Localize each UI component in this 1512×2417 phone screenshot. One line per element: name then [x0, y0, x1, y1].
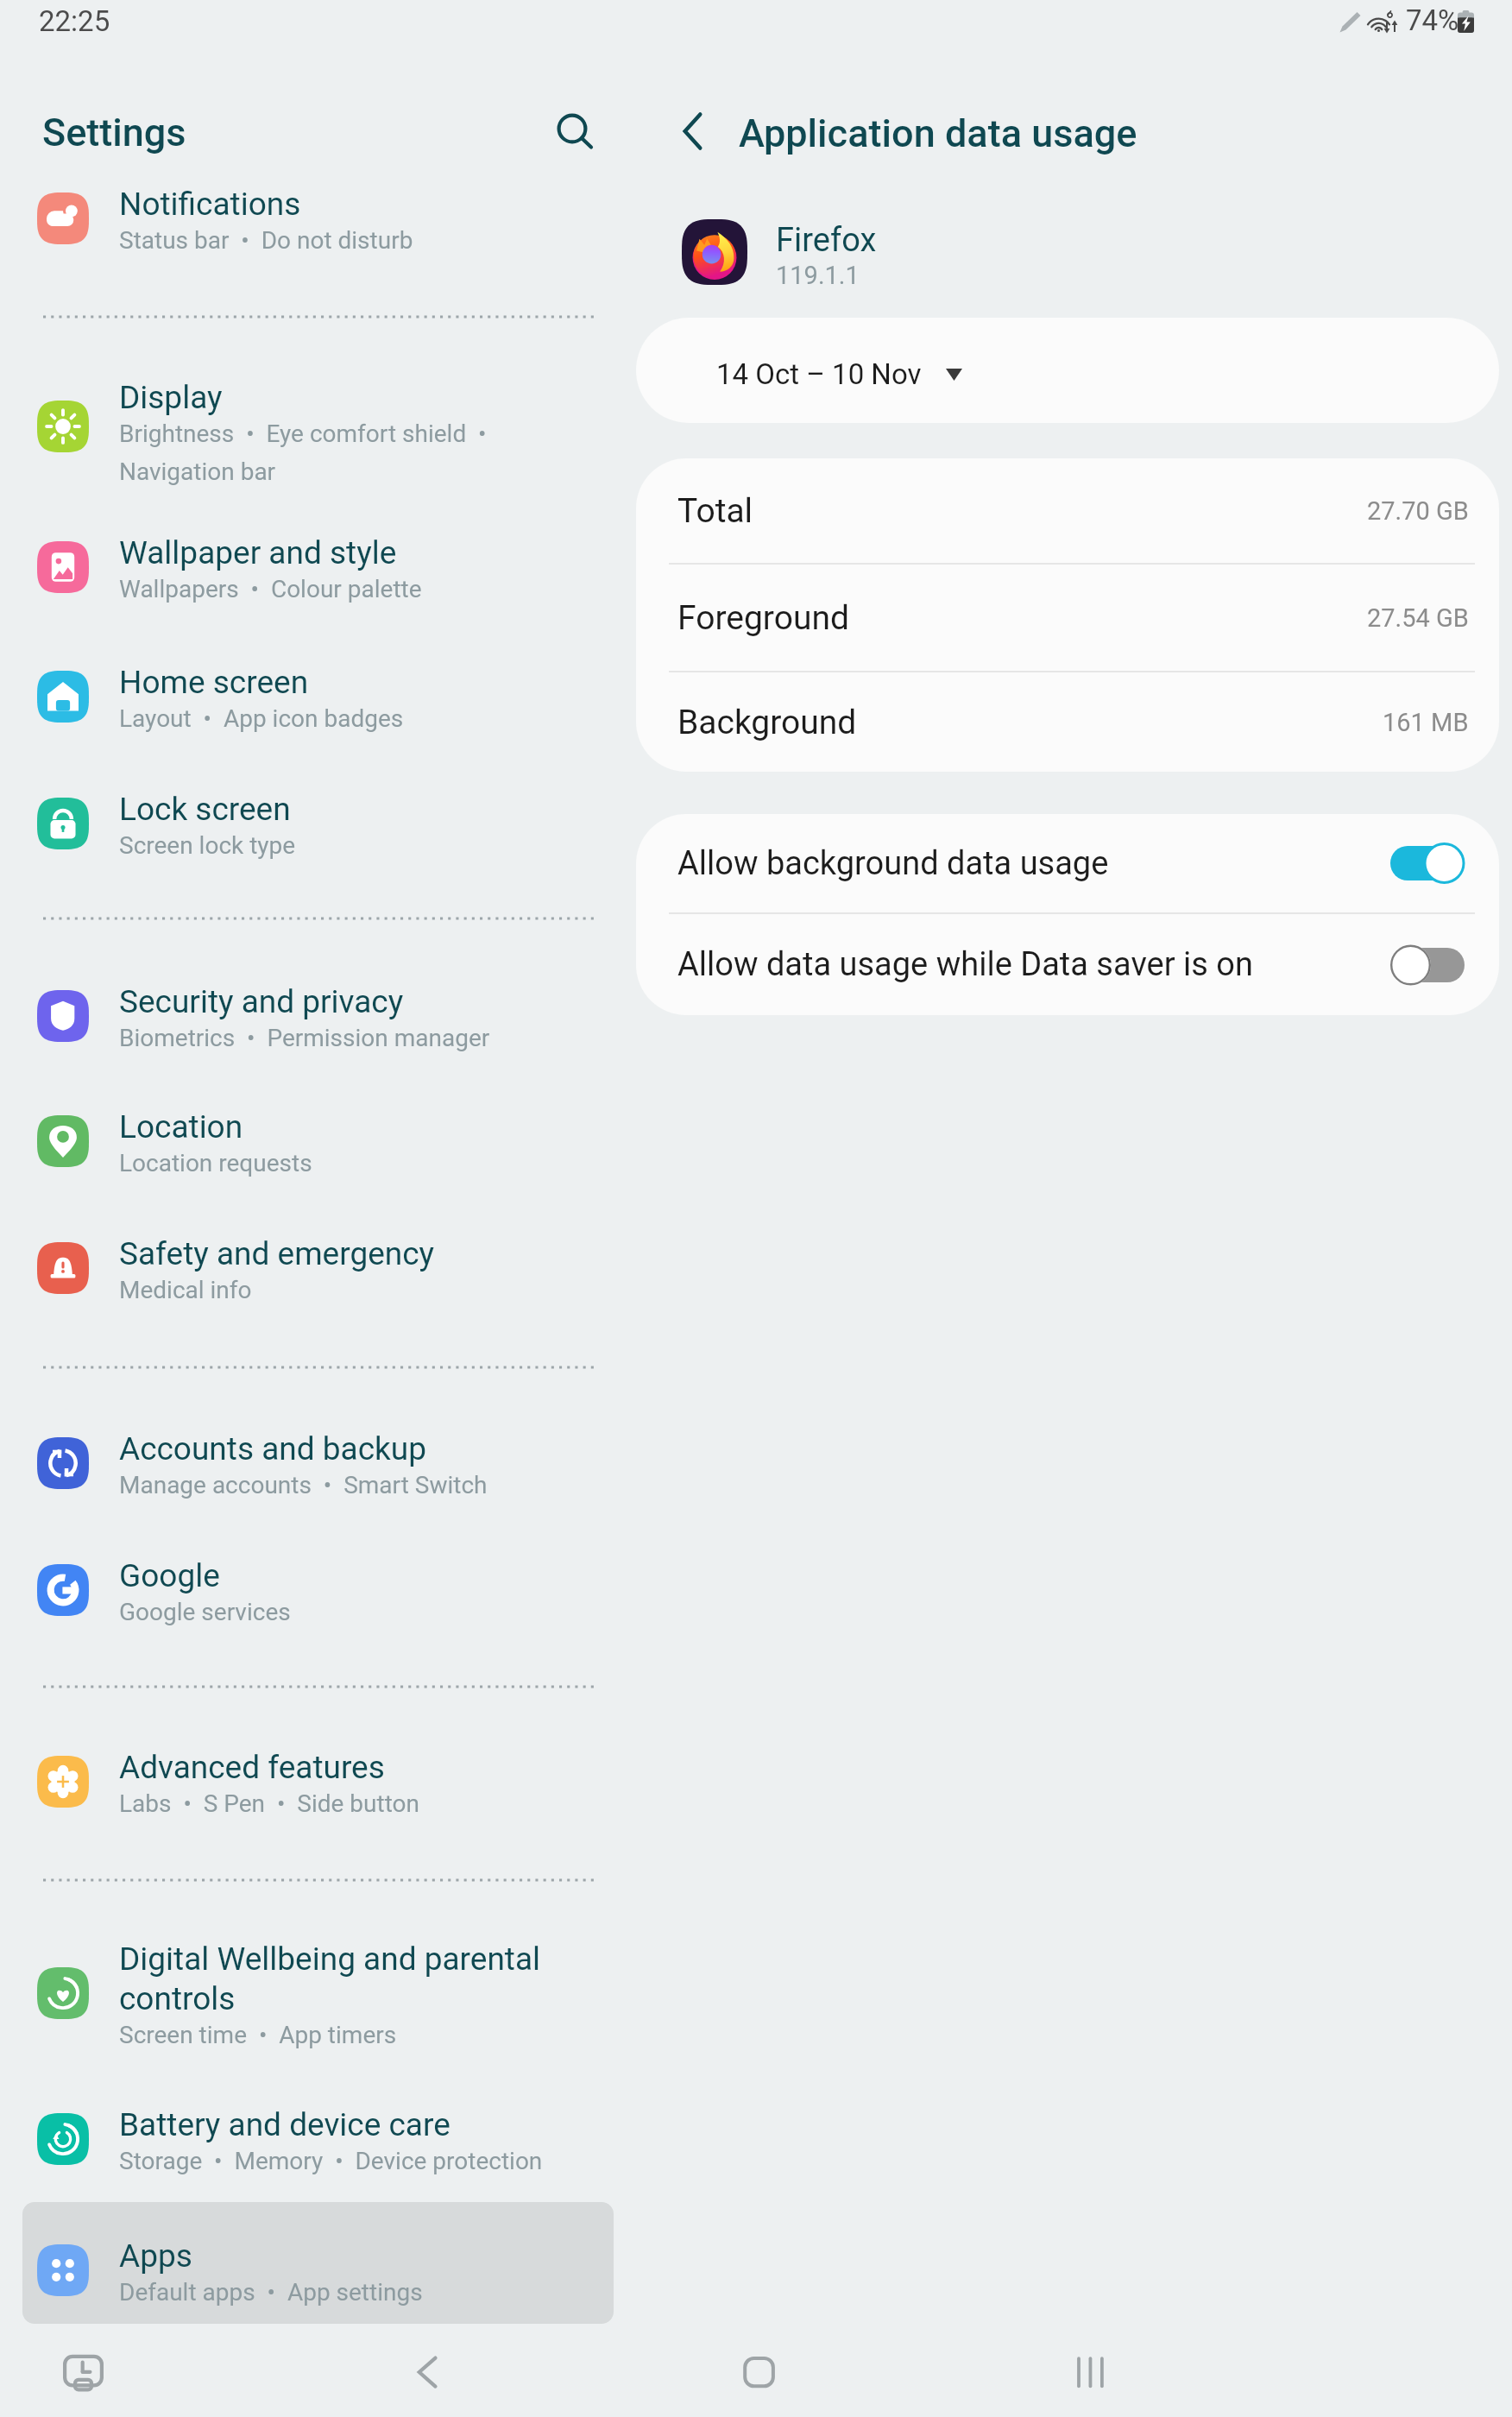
- staticText: Default apps • App settings: [119, 2278, 423, 2307]
- button[interactable]: [22, 1529, 614, 1650]
- staticText: Settings: [42, 110, 186, 155]
- button[interactable]: [22, 955, 614, 1076]
- staticText: Apps: [119, 2237, 192, 2275]
- staticText: Labs • S Pen • Side button: [119, 1789, 419, 1818]
- button[interactable]: [22, 506, 614, 628]
- staticText: Home screen: [119, 664, 309, 701]
- button[interactable]: Foreground: [636, 565, 1499, 671]
- button[interactable]: [22, 2202, 614, 2324]
- button[interactable]: Back: [658, 97, 727, 166]
- staticText: Application data usage: [739, 110, 1137, 156]
- button[interactable]: Allow background data usage: [636, 814, 1499, 912]
- button[interactable]: Home: [708, 2336, 811, 2412]
- staticText: Screen time • App timers: [119, 2021, 397, 2049]
- button[interactable]: [22, 350, 614, 472]
- staticText: Medical info: [119, 1276, 252, 1304]
- staticText: Status bar • Do not disturb: [119, 226, 413, 255]
- button[interactable]: [22, 157, 614, 279]
- button[interactable]: Total: [636, 458, 1499, 563]
- staticText: Battery and device care: [119, 2106, 450, 2143]
- staticText: Google services: [119, 1598, 291, 1626]
- staticText: 74%: [1406, 3, 1459, 37]
- button[interactable]: [22, 1207, 614, 1328]
- staticText: Brightness • Eye comfort shield • Naviga…: [119, 420, 487, 486]
- button[interactable]: 14 Oct – 10 Nov: [636, 318, 1499, 423]
- button[interactable]: [22, 1912, 614, 2076]
- staticText: Storage • Memory • Device protection: [119, 2147, 543, 2175]
- staticText: Biometrics • Permission manager: [119, 1024, 490, 1052]
- staticText: 119.1.1: [776, 261, 860, 290]
- staticText: Google: [119, 1557, 220, 1594]
- staticText: Location requests: [119, 1149, 312, 1177]
- button[interactable]: Search: [538, 95, 607, 164]
- staticText: Foreground: [677, 598, 849, 638]
- button[interactable]: Background: [636, 672, 1499, 772]
- button[interactable]: Back: [371, 2336, 483, 2412]
- staticText: Firefox: [776, 221, 877, 260]
- staticText: Notifications: [119, 186, 301, 223]
- staticText: Lock screen: [119, 791, 291, 828]
- staticText: Layout • App icon badges: [119, 704, 404, 733]
- button[interactable]: Recent apps: [1044, 2336, 1139, 2412]
- button[interactable]: [22, 1720, 614, 1842]
- staticText: 14 Oct – 10 Nov: [716, 357, 922, 391]
- button[interactable]: Allow data usage while Data saver is on: [636, 914, 1499, 1015]
- button[interactable]: [22, 1402, 614, 1524]
- button[interactable]: [22, 2078, 614, 2199]
- staticText: Security and privacy: [119, 983, 404, 1020]
- staticText: Total: [677, 491, 753, 531]
- staticText: Wallpaper and style: [119, 534, 397, 571]
- staticText: Digital Wellbeing and parental controls: [119, 1941, 541, 2017]
- staticText: Screen lock type: [119, 831, 296, 860]
- staticText: Accounts and backup: [119, 1430, 426, 1467]
- staticText: Manage accounts • Smart Switch: [119, 1471, 488, 1499]
- staticText: Display: [119, 379, 223, 416]
- button[interactable]: [22, 762, 614, 884]
- staticText: Allow background data usage: [677, 844, 1109, 883]
- staticText: Safety and emergency: [119, 1235, 435, 1272]
- staticText: 22:25: [39, 4, 110, 38]
- button[interactable]: [22, 1080, 614, 1202]
- staticText: 27.70 GB: [1367, 496, 1469, 526]
- staticText: Wallpapers • Colour palette: [119, 575, 422, 603]
- staticText: 27.54 GB: [1367, 603, 1469, 633]
- staticText: Location: [119, 1108, 243, 1145]
- staticText: Advanced features: [119, 1749, 385, 1786]
- button[interactable]: Screen capture: [31, 2336, 135, 2412]
- staticText: Background: [677, 703, 857, 742]
- button[interactable]: [22, 635, 614, 757]
- staticText: Allow data usage while Data saver is on: [677, 945, 1253, 984]
- staticText: 161 MB: [1383, 708, 1469, 737]
